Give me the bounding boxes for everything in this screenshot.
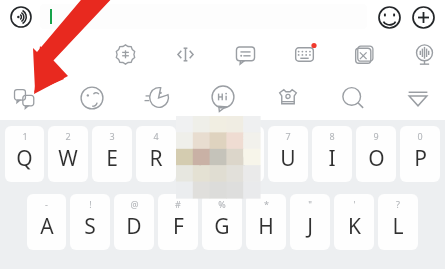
button[interactable]: Clipboard cut [347,37,381,71]
button[interactable]: Voice input [6,2,36,32]
staticText: L [392,212,404,241]
staticText: 3 [109,130,115,142]
staticText: 1 [22,130,28,142]
button[interactable]: Wink emoji [73,79,111,117]
button[interactable]: Voice to text [407,37,441,71]
staticText: " [308,198,312,210]
button[interactable]: " [290,194,330,250]
button[interactable]: Keyboard settings [287,37,321,71]
staticText: R [149,144,163,173]
button[interactable]: 8 [312,126,352,182]
staticText: 4 [153,130,159,142]
staticText: * [264,198,269,210]
staticText: U [280,144,296,173]
button[interactable]: Search [334,79,372,117]
button[interactable]: 1 [5,126,44,182]
button[interactable]: 6 [224,126,264,182]
button[interactable]: % [202,194,242,250]
button[interactable]: ? [378,194,418,250]
button[interactable] [40,4,367,29]
button[interactable]: @ [114,194,154,250]
button[interactable]: # [158,194,198,250]
button[interactable]: Shirt sticker [269,79,307,117]
staticText: A [40,212,54,241]
button[interactable]: Hi bubble [204,79,242,117]
staticText: T [194,144,206,173]
staticText: 2 [65,130,71,142]
staticText: 6 [241,130,247,142]
button[interactable]: 7 [268,126,308,182]
staticText: K [348,212,361,241]
button[interactable]: Emoji [373,1,405,33]
staticText: D [126,212,142,241]
staticText: % [218,198,226,210]
staticText: O [368,144,385,173]
button[interactable]: - [27,194,66,250]
staticText: W [58,144,78,173]
staticText: I [328,144,336,173]
button[interactable]: Chinese input [108,37,142,71]
staticText: ! [89,198,92,210]
staticText: S [84,212,96,241]
staticText: 8 [329,130,335,142]
staticText: ' [353,198,356,210]
button[interactable]: Meme [138,79,176,117]
button[interactable]: 0 [400,126,440,182]
button[interactable]: Quick phrases [228,37,262,71]
button[interactable]: 9 [356,126,396,182]
staticText: 5 [197,130,203,142]
button[interactable]: KK sticker [8,79,46,117]
staticText: - [45,198,48,210]
staticText: 7 [285,130,291,142]
button[interactable]: 4 [136,126,176,182]
button[interactable]: ' [334,194,374,250]
staticText: F [173,212,184,241]
staticText: @ [130,198,139,210]
button[interactable]: Cursor move [168,37,202,71]
button[interactable]: Collapse keyboard [399,79,437,117]
button[interactable]: * [246,194,286,250]
staticText: P [414,144,427,173]
staticText: Q [16,144,33,173]
staticText: J [307,212,313,241]
staticText: # [175,198,181,210]
button[interactable]: 2 [48,126,88,182]
staticText: ? [396,198,400,210]
staticText: E [106,144,118,173]
button[interactable]: ! [70,194,110,250]
button[interactable]: 5 [180,126,220,182]
staticText: G [214,212,230,241]
staticText: H [258,212,274,241]
staticText: 0 [417,130,423,142]
button[interactable]: 3 [92,126,132,182]
button[interactable]: Add [407,1,439,33]
staticText: Y [238,144,250,173]
staticText: 9 [373,130,379,142]
